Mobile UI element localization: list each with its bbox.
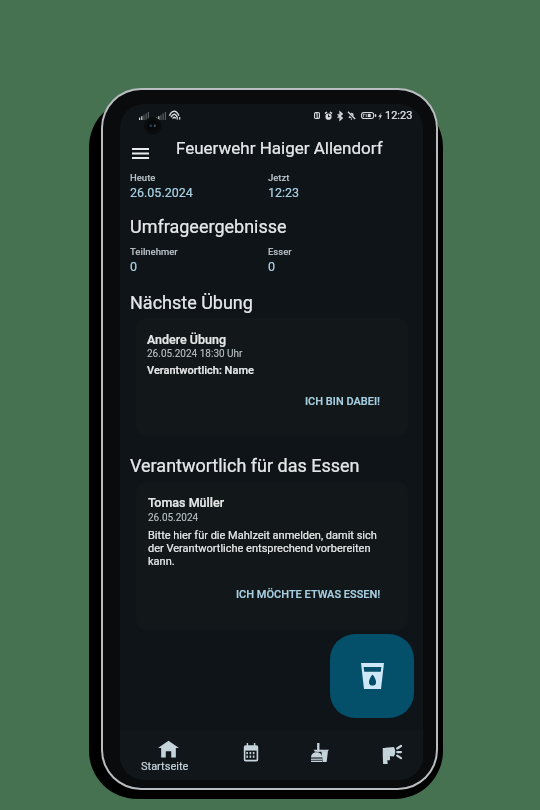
staticText: Jetzt — [268, 172, 290, 183]
button[interactable]: Menü öffnen — [126, 139, 154, 167]
staticText: Verantwortlich: Name — [147, 364, 254, 377]
staticText: 26.05.2024 — [130, 185, 193, 200]
staticText: 0 — [268, 259, 276, 274]
button[interactable]: ICH MÖCHTE ETWAS ESSEN! — [228, 582, 389, 607]
staticText: Teilnehmer — [130, 246, 178, 257]
staticText: 0 — [130, 259, 138, 274]
staticText: Feuerwehr Haiger Allendorf — [176, 138, 383, 158]
button[interactable]: Getränk eintragen — [330, 634, 414, 718]
staticText: Tomas Müller — [148, 495, 225, 510]
staticText: Heute — [130, 172, 156, 183]
button[interactable]: Essen — [292, 731, 353, 780]
staticText: 12:23 — [385, 109, 413, 122]
staticText: Umfrageergebnisse — [130, 216, 287, 237]
staticText: ICH BIN DABEI! — [305, 395, 381, 408]
staticText: Startseite — [141, 760, 189, 773]
button[interactable]: Termine — [216, 731, 292, 780]
staticText: 26.05.2024 — [148, 512, 199, 524]
staticText: Esser — [268, 246, 292, 257]
button[interactable]: Neuigkeiten — [353, 731, 423, 780]
button[interactable]: ICH BIN DABEI! — [297, 389, 389, 414]
staticText: ICH MÖCHTE ETWAS ESSEN! — [236, 588, 381, 601]
staticText: 26.05.2024 18:30 Uhr — [147, 348, 243, 360]
staticText: Andere Übung — [147, 332, 227, 347]
button[interactable]: Startseite — [120, 731, 216, 780]
staticText: Nächste Übung — [130, 292, 253, 313]
staticText: Verantwortlich für das Essen — [130, 455, 360, 476]
staticText: Bitte hier für die Mahlzeit anmelden, da… — [148, 529, 381, 568]
staticText: 12:23 — [268, 185, 300, 200]
